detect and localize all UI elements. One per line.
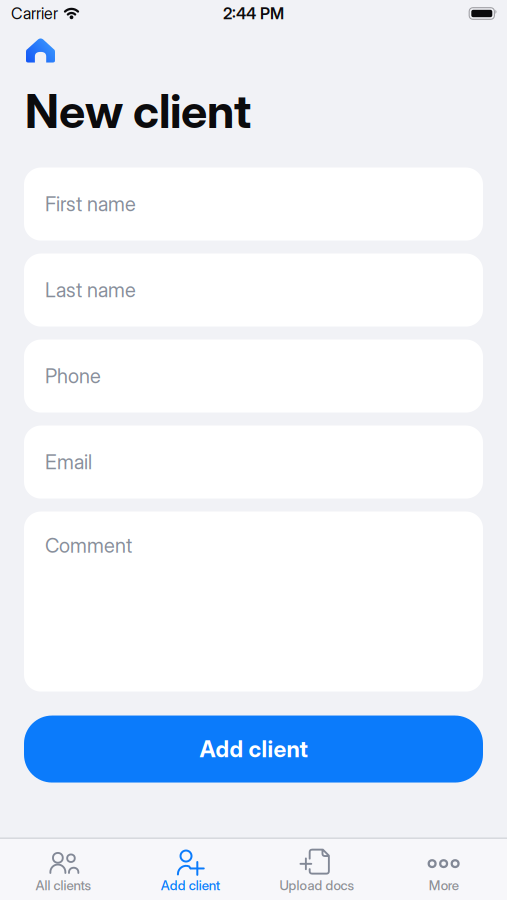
staticText: Last name xyxy=(45,278,136,302)
staticText: Add client xyxy=(161,878,220,893)
staticText: New client xyxy=(25,83,251,139)
staticText: Comment xyxy=(45,534,132,557)
staticText: All clients xyxy=(35,878,91,893)
staticText: First name xyxy=(45,192,136,216)
button[interactable]: Email xyxy=(24,426,483,499)
button[interactable]: Add client xyxy=(24,716,483,783)
button[interactable]: More xyxy=(380,845,507,893)
staticText: Phone xyxy=(45,364,101,388)
button[interactable]: First name xyxy=(24,168,483,241)
staticText: Add client xyxy=(199,736,307,762)
button[interactable]: Comment xyxy=(24,512,483,692)
staticText: More xyxy=(429,878,459,893)
staticText: Email xyxy=(45,450,92,474)
staticText: 2:44 PM xyxy=(223,4,284,23)
button[interactable]: Last name xyxy=(24,254,483,327)
staticText: Carrier xyxy=(11,4,58,23)
button[interactable]: Add client xyxy=(127,845,254,893)
staticText: Upload docs xyxy=(279,878,354,893)
button[interactable]: Phone xyxy=(24,340,483,413)
button[interactable]: All clients xyxy=(0,845,127,893)
button[interactable]: Upload docs xyxy=(253,845,380,893)
